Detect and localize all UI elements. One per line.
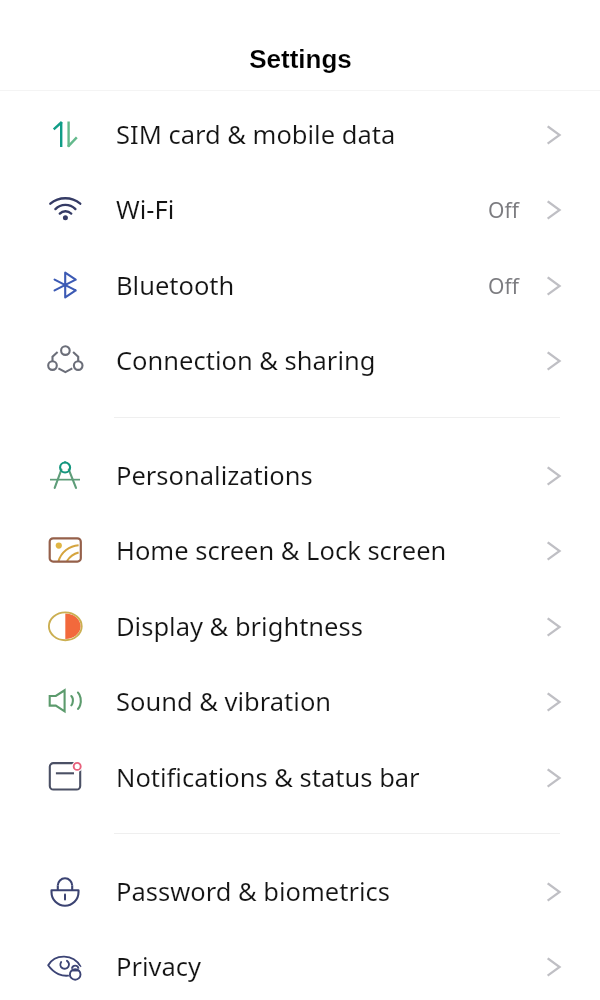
other: Privacy	[45, 947, 85, 987]
staticText: Bluetooth	[116, 268, 235, 303]
staticText: Password & biometrics	[116, 874, 390, 909]
staticText: SIM card & mobile data	[116, 117, 396, 152]
other: Bluetooth	[45, 266, 85, 306]
button[interactable]: Notifications and status bar	[0, 740, 600, 816]
staticText: Notifications & status bar	[116, 760, 420, 795]
button[interactable]: Privacy	[0, 929, 600, 1000]
staticText: Connection & sharing	[116, 343, 376, 378]
other: Password and biometrics	[45, 872, 85, 912]
staticText: Settings	[249, 44, 352, 73]
other: Home screen and lock screen	[45, 531, 85, 571]
other: Sound and vibration	[45, 682, 85, 722]
other: Personalizations	[45, 456, 85, 496]
button[interactable]: Display and brightness	[0, 589, 600, 665]
staticText: Privacy	[116, 949, 202, 984]
other: Wi-Fi	[45, 190, 85, 230]
button[interactable]: Password and biometrics	[0, 854, 600, 930]
button[interactable]: Bluetooth	[0, 248, 600, 324]
other: Connection and sharing	[45, 341, 85, 381]
other: Display and brightness	[45, 607, 85, 647]
staticText: Off	[488, 272, 519, 301]
button[interactable]: Personalizations	[0, 438, 600, 514]
staticText: Sound & vibration	[116, 684, 332, 719]
other: Notifications and status bar	[45, 758, 85, 798]
button[interactable]: Connection and sharing	[0, 323, 600, 399]
button[interactable]: SIM card and mobile data	[0, 97, 600, 173]
staticText: Off	[488, 196, 519, 225]
staticText: Wi-Fi	[116, 192, 175, 227]
button[interactable]: Sound and vibration	[0, 664, 600, 740]
staticText: Home screen & Lock screen	[116, 533, 447, 568]
button[interactable]: Home screen and lock screen	[0, 513, 600, 589]
staticText: Personalizations	[116, 458, 313, 493]
staticText: Display & brightness	[116, 609, 363, 644]
button[interactable]: Wi-Fi	[0, 172, 600, 248]
other: SIM card and mobile data	[45, 115, 85, 155]
